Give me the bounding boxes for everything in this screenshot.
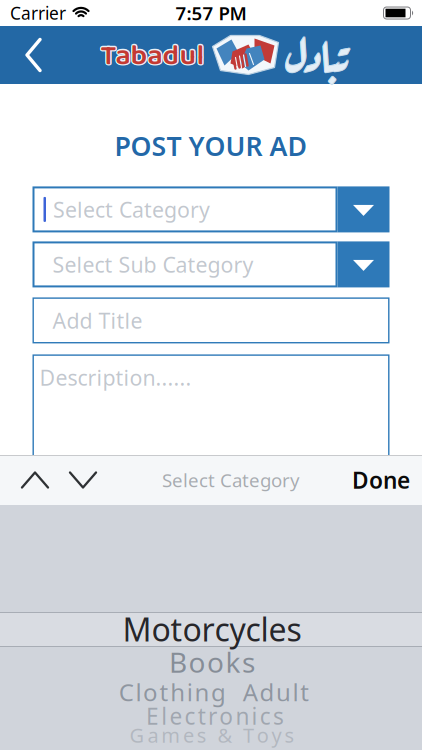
staticText: l: [135, 676, 141, 708]
staticText: o: [207, 643, 224, 681]
staticText: Tabadul: [100, 34, 204, 81]
staticText: Tabadul: [100, 31, 204, 78]
staticText: Select Category: [162, 468, 300, 492]
staticText: Carrier: [10, 1, 66, 24]
staticText: o: [219, 701, 233, 731]
staticText: T: [243, 722, 254, 748]
button[interactable]: Previous field: [0, 454, 48, 505]
staticText: s: [242, 643, 255, 681]
staticText: [210, 722, 215, 748]
staticText: n: [194, 676, 209, 708]
staticText: تبادل: [285, 16, 347, 82]
staticText: m: [161, 722, 180, 748]
staticText: Tabadul: [99, 32, 203, 79]
staticText: 7:57 PM: [175, 1, 246, 25]
staticText: Description......: [39, 363, 191, 392]
staticText: u: [276, 676, 291, 708]
staticText: l: [161, 701, 167, 731]
staticText: r: [208, 701, 217, 731]
staticText: t: [300, 676, 309, 708]
button[interactable]: Motorcycles: [2, 613, 422, 645]
button[interactable]: G: [130, 722, 294, 748]
staticText: G: [130, 722, 145, 748]
staticText: i: [252, 701, 258, 731]
staticText: o: [257, 722, 269, 748]
staticText: i: [187, 676, 193, 708]
staticText: Add Title: [52, 306, 142, 334]
staticText: n: [235, 701, 249, 731]
button[interactable]: Select Category: [32, 186, 389, 232]
staticText: Tabadul: [100, 32, 204, 79]
button[interactable]: Back: [0, 26, 60, 83]
button[interactable]: E: [146, 701, 284, 731]
staticText: تبادل: [285, 16, 347, 82]
staticText: e: [183, 722, 194, 748]
staticText: C: [119, 676, 134, 708]
button[interactable]: B: [169, 643, 255, 681]
staticText: k: [225, 643, 240, 681]
staticText: تبادل: [285, 18, 347, 84]
staticText: Tabadul: [100, 32, 204, 79]
staticText: تبادل: [286, 17, 348, 83]
button[interactable]: Add Title: [32, 297, 389, 343]
button[interactable]: Done: [352, 453, 422, 507]
staticText: تبادل: [286, 16, 348, 82]
staticText: d: [259, 676, 274, 708]
staticText: o: [188, 643, 205, 681]
staticText: &: [217, 722, 232, 748]
staticText: Motorcycles: [122, 608, 301, 650]
staticText: c: [260, 701, 271, 731]
staticText: [235, 722, 240, 748]
button[interactable]: C: [119, 676, 309, 708]
staticText: y: [272, 722, 282, 748]
button[interactable]: Next field: [48, 454, 96, 505]
staticText: a: [147, 722, 158, 748]
staticText: Tabadul: [101, 32, 205, 79]
staticText: تبادل: [284, 17, 346, 83]
staticText: c: [185, 701, 196, 731]
staticText: تبادل: [286, 17, 348, 84]
staticText: t: [160, 676, 169, 708]
staticText: Select Sub Category: [52, 250, 253, 278]
staticText: Tabadul: [100, 33, 204, 80]
staticText: Done: [352, 465, 410, 495]
staticText: B: [169, 643, 187, 681]
button[interactable]: Select Sub Category: [32, 241, 389, 287]
staticText: تبادل: [285, 17, 347, 83]
staticText: g: [211, 676, 226, 708]
staticText: Tabadul: [101, 33, 205, 80]
staticText: Tabadul: [102, 32, 206, 79]
staticText: s: [284, 722, 294, 748]
staticText: t: [198, 701, 206, 731]
staticText: E: [146, 701, 159, 731]
staticText: h: [170, 676, 185, 708]
button[interactable]: Description......: [32, 354, 389, 474]
staticText: s: [273, 701, 284, 731]
staticText: o: [143, 676, 158, 708]
staticText: l: [293, 676, 299, 708]
staticText: e: [169, 701, 182, 731]
staticText: Select Category: [53, 195, 210, 223]
staticText: POST YOUR AD: [114, 128, 307, 163]
staticText: A: [243, 676, 258, 708]
staticText: s: [197, 722, 207, 748]
staticText: تبادل: [285, 17, 347, 84]
